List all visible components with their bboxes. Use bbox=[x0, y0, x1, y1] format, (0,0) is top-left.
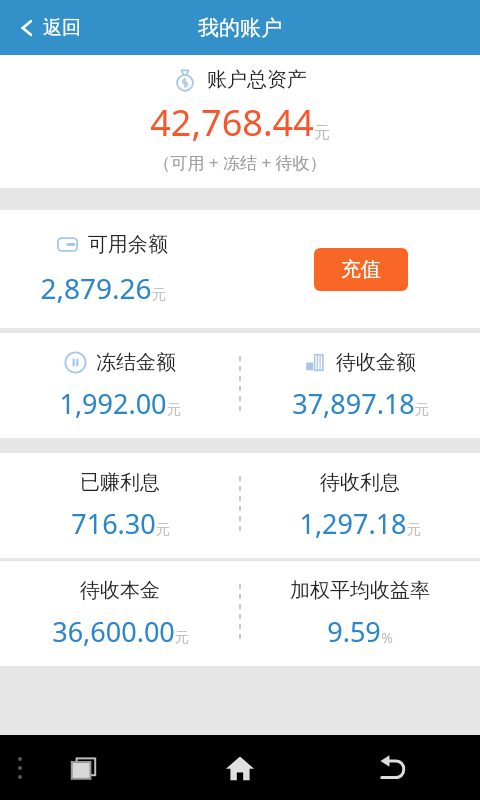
staticText: 1,297.18 bbox=[299, 505, 407, 542]
button[interactable]: 待收本金 bbox=[0, 561, 240, 666]
staticText: 42,768.44 bbox=[150, 98, 314, 147]
staticText: 待收金额 bbox=[336, 350, 416, 375]
button[interactable]: 待收利息 bbox=[240, 453, 480, 558]
staticText: 待收本金 bbox=[80, 578, 160, 603]
button[interactable]: Receivable amount bbox=[240, 333, 480, 438]
staticText: （可用 + 冻结 + 待收） bbox=[153, 151, 327, 174]
button[interactable]: 返回 bbox=[10, 10, 89, 46]
other: Receivable amount bbox=[304, 351, 327, 374]
staticText: 元 bbox=[167, 401, 181, 419]
staticText: 2,879.26 bbox=[40, 269, 152, 307]
staticText: 可用余额 bbox=[88, 232, 168, 257]
staticText: 元 bbox=[152, 286, 166, 304]
staticText: 1,992.00 bbox=[59, 385, 167, 422]
staticText: 元 bbox=[407, 521, 421, 539]
staticText: 充值 bbox=[341, 257, 381, 282]
staticText: 已赚利息 bbox=[80, 470, 160, 495]
staticText: 我的账户 bbox=[198, 15, 282, 41]
other: Total assets bbox=[173, 68, 197, 92]
button[interactable]: Frozen amount bbox=[0, 333, 240, 438]
button[interactable]: Recent apps bbox=[62, 745, 108, 791]
other: Frozen amount bbox=[64, 351, 87, 374]
staticText: 加权平均收益率 bbox=[290, 578, 430, 603]
staticText: 36,600.00 bbox=[52, 613, 175, 650]
button[interactable]: 加权平均收益率 bbox=[240, 561, 480, 666]
button[interactable]: 已赚利息 bbox=[0, 453, 240, 558]
staticText: 37,897.18 bbox=[292, 385, 415, 422]
staticText: 9.59 bbox=[327, 613, 381, 650]
button[interactable]: Home bbox=[214, 742, 266, 794]
staticText: 待收利息 bbox=[320, 470, 400, 495]
staticText: 元 bbox=[415, 401, 429, 419]
staticText: 元 bbox=[156, 521, 170, 539]
staticText: 元 bbox=[314, 123, 330, 143]
button[interactable]: Menu bbox=[12, 751, 28, 785]
staticText: 716.30 bbox=[71, 505, 156, 542]
staticText: 账户总资产 bbox=[207, 67, 307, 92]
other: Available balance bbox=[56, 233, 79, 256]
staticText: 冻结金额 bbox=[96, 350, 176, 375]
staticText: 元 bbox=[175, 629, 189, 647]
button[interactable]: 充值 bbox=[314, 248, 408, 291]
button[interactable]: Back bbox=[366, 742, 418, 794]
staticText: 返回 bbox=[43, 16, 81, 40]
staticText: % bbox=[381, 628, 393, 647]
